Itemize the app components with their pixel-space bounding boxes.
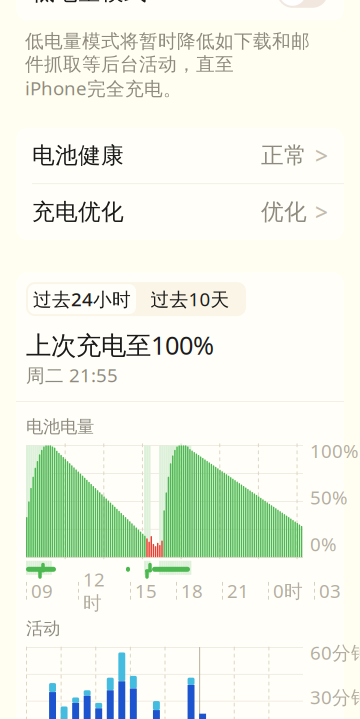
staticText: >	[315, 140, 328, 171]
staticText: 电池健康	[32, 142, 124, 169]
staticText: 30分钟	[310, 685, 360, 709]
staticText: 充电优化	[32, 198, 124, 226]
staticText: 21	[227, 578, 249, 603]
staticText: 过去10天	[150, 287, 229, 311]
staticText: 50%	[310, 485, 348, 510]
staticText: 0时	[273, 578, 303, 603]
staticText: 优化	[261, 198, 307, 226]
staticText: 15	[135, 578, 157, 603]
staticText: 低电量模式	[32, 0, 147, 6]
staticText: 上次充电至100%	[26, 328, 214, 362]
staticText: 活动	[26, 618, 60, 639]
staticText: 周二 21:55	[26, 363, 118, 387]
staticText: 100%	[310, 438, 359, 463]
staticText: 电池电量	[26, 416, 94, 437]
staticText: 12时	[83, 567, 105, 615]
staticText: 09	[31, 578, 53, 603]
button[interactable]: 过去24小时	[28, 284, 136, 314]
staticText: 03	[319, 578, 341, 603]
button[interactable]: 过去10天	[136, 284, 244, 314]
staticText: 低电量模式将暂时降低如下载和邮件抓取等后台活动，直至 iPhone完全充电。	[25, 30, 310, 100]
staticText: 0%	[310, 531, 337, 556]
staticText: 60分钟	[310, 640, 360, 665]
staticText: >	[315, 197, 328, 227]
button[interactable]: 充电优化	[16, 184, 344, 240]
staticText: 过去24小时	[33, 287, 131, 311]
staticText: 18	[181, 578, 203, 603]
button[interactable]: 低电量模式	[16, 0, 344, 21]
button[interactable]: 电池健康	[16, 128, 344, 184]
staticText: 正常	[261, 142, 307, 169]
